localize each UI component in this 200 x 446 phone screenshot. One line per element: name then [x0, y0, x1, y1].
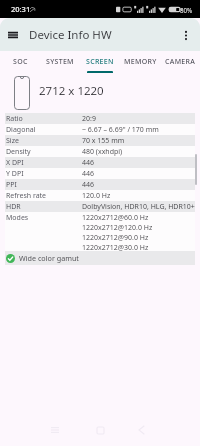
staticText: Density: [6, 147, 82, 157]
staticText: 20:9: [82, 114, 96, 124]
staticText: 446: [82, 169, 95, 179]
button[interactable]: SCREEN: [80, 51, 120, 73]
staticText: 446: [82, 180, 95, 190]
staticText: SOC: [13, 57, 28, 67]
staticText: Refresh rate: [6, 191, 82, 201]
staticText: 1220x2712@30.0 Hz: [82, 243, 149, 251]
staticText: SCREEN: [86, 57, 114, 67]
staticText: CAMERA: [165, 57, 196, 67]
staticText: Modes: [6, 213, 82, 223]
staticText: SYSTEM: [46, 57, 74, 67]
staticText: Size: [6, 136, 82, 146]
staticText: 446: [82, 158, 95, 168]
staticText: DolbyVision, HDR10, HLG, HDR10+: [82, 202, 195, 212]
button[interactable]: SYSTEM: [40, 51, 80, 73]
staticText: 480 (xxhdpi): [82, 147, 123, 157]
staticText: 1220x2712@120.0 Hz: [82, 223, 153, 233]
staticText: MEMORY: [124, 57, 157, 67]
staticText: 70 x 155 mm: [82, 136, 125, 146]
button[interactable]: Wide color gamut: [6, 251, 195, 265]
button[interactable]: SOC: [0, 51, 40, 73]
staticText: X DPI: [6, 158, 82, 168]
staticText: Y DPI: [6, 169, 82, 179]
staticText: 80%: [180, 6, 193, 14]
staticText: ~ 6.67 – 6.69" / 170 mm: [82, 125, 159, 135]
button[interactable]: MEMORY: [120, 51, 160, 73]
staticText: 120.0 Hz: [82, 191, 111, 201]
staticText: 1220x2712@90.0 Hz: [82, 233, 149, 243]
staticText: Ratio: [6, 114, 82, 124]
staticText: 2712 x 1220: [39, 83, 104, 99]
button[interactable]: More options: [176, 25, 196, 45]
staticText: PPI: [6, 180, 82, 190]
button[interactable]: Menu: [3, 25, 23, 45]
staticText: Wide color gamut: [19, 253, 79, 263]
button[interactable]: CAMERA: [160, 51, 200, 73]
staticText: Diagonal: [6, 125, 82, 135]
staticText: 1220x2712@60.0 Hz: [82, 213, 149, 223]
staticText: HDR: [6, 202, 82, 212]
staticText: 20:31: [11, 4, 31, 14]
staticText: Device Info HW: [29, 27, 112, 43]
